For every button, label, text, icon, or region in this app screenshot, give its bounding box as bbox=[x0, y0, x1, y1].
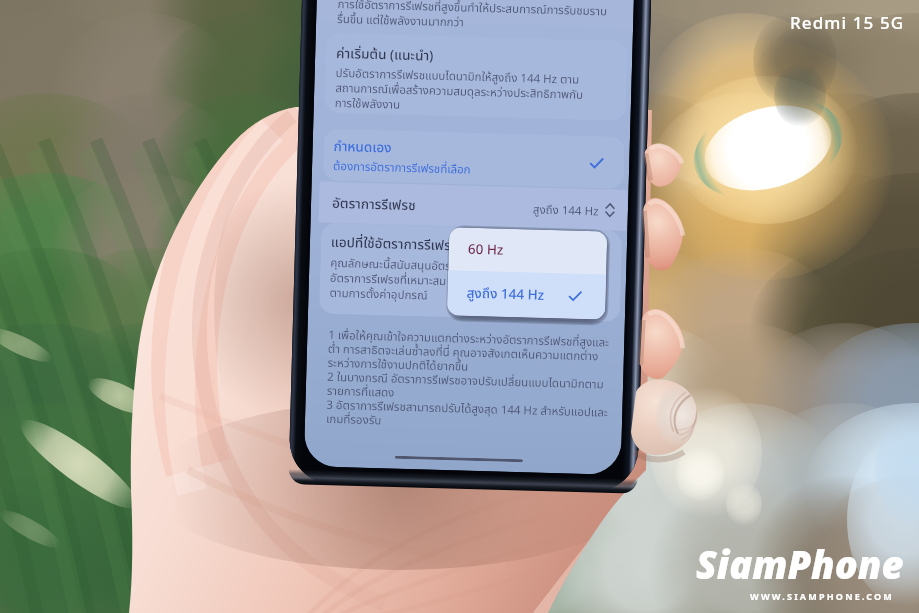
staticText: 60 Hz bbox=[467, 240, 504, 261]
staticText: Redmi 15 5G bbox=[790, 11, 905, 34]
staticText: WWW.SIAMPHONE.COM bbox=[750, 590, 894, 602]
staticText: แอปที่ใช้อัตราการรีเฟรช bbox=[331, 233, 459, 256]
staticText: SiamPhone bbox=[696, 538, 904, 590]
button[interactable]: 60 Hz bbox=[448, 227, 607, 275]
button[interactable]: ค่าเริ่มต้น (แนะนำ) bbox=[325, 33, 628, 121]
staticText: กำหนดเอง bbox=[333, 137, 392, 158]
staticText: สูงถึง 144 Hz bbox=[466, 284, 545, 306]
button[interactable]: สูงถึง 144 Hz bbox=[447, 270, 606, 319]
staticText: ค่าเริ่มต้น (แนะนำ) bbox=[336, 44, 434, 67]
button[interactable]: อัตราการรีเฟรช bbox=[318, 181, 627, 231]
staticText: สูงถึง 144 Hz bbox=[533, 201, 599, 220]
button[interactable]: แอปที่ใช้อัตราการรีเฟรช bbox=[319, 223, 622, 322]
button[interactable]: กำหนดเอง bbox=[323, 129, 625, 189]
staticText: อัตราการรีเฟรช bbox=[332, 194, 416, 216]
staticText: ต้องการอัตราการรีเฟรชที่เลือก bbox=[333, 158, 471, 179]
staticText: ปรับอัตราการรีเฟรชแบบไดนามิกให้สูงถึง 14… bbox=[335, 65, 584, 119]
staticText: คุณลักษณะนี้สนับสนุนอัตรา อัตราการรีเฟรช… bbox=[329, 255, 457, 305]
other: Selected bbox=[588, 155, 604, 171]
staticText: การใช้อัตราการรีเฟรชที่สูงขึ้นทำให้ประสบ… bbox=[337, 0, 608, 35]
staticText: 1 เพื่อให้คุณเข้าใจความแตกต่างระหว่างอัต… bbox=[326, 327, 610, 436]
